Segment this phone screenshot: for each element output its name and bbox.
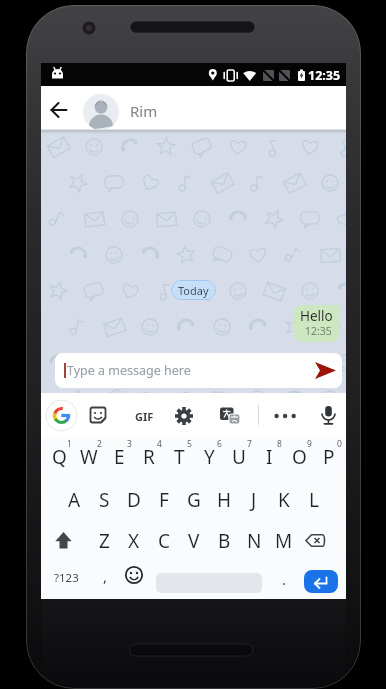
staticText: ?123 — [54, 570, 79, 586]
button[interactable]: H — [209, 485, 239, 515]
button[interactable] — [304, 570, 338, 593]
staticText: , — [103, 566, 108, 586]
button[interactable] — [220, 406, 241, 427]
button[interactable]: X — [119, 526, 149, 556]
staticText: 8 — [277, 438, 282, 450]
button[interactable]: E — [104, 442, 134, 472]
staticText: 7 — [247, 438, 252, 450]
staticText: Hello — [300, 307, 333, 325]
staticText: K — [278, 487, 290, 513]
staticText: Rim — [130, 101, 158, 121]
staticText: Y — [204, 444, 215, 470]
staticText: 6 — [217, 438, 222, 450]
staticText: A — [68, 487, 81, 513]
button[interactable]: Today — [171, 280, 216, 300]
button[interactable]: V — [179, 526, 209, 556]
button[interactable]: N — [239, 526, 269, 556]
button[interactable]: , — [85, 561, 125, 591]
button[interactable] — [46, 400, 77, 431]
staticText: D — [127, 487, 141, 513]
staticText: R — [143, 444, 155, 470]
staticText: 3 — [127, 438, 132, 450]
button[interactable]: Type a message here — [55, 353, 342, 388]
staticText: 12:35 — [308, 67, 341, 84]
staticText: N — [247, 528, 262, 554]
staticText: U — [232, 444, 246, 470]
button[interactable]: C — [149, 526, 179, 556]
button[interactable]: Z — [89, 526, 119, 556]
staticText: 4 — [157, 438, 162, 450]
button[interactable]: R — [134, 442, 164, 472]
staticText: T — [174, 444, 185, 470]
staticText: 5 — [187, 438, 192, 450]
staticText: GIF — [135, 409, 154, 424]
staticText: 0 — [337, 438, 342, 450]
button[interactable]: T — [164, 442, 194, 472]
staticText: 2 — [97, 438, 102, 450]
button[interactable] — [271, 406, 300, 426]
staticText: J — [251, 487, 257, 513]
staticText: 1 — [67, 438, 72, 450]
staticText: B — [218, 528, 231, 554]
button[interactable]: GIF — [124, 401, 164, 431]
staticText: 12:35 — [305, 324, 332, 338]
staticText: 9 — [307, 438, 312, 450]
button[interactable] — [300, 526, 330, 556]
button[interactable]: D — [119, 485, 149, 515]
button[interactable]: U — [224, 442, 254, 472]
button[interactable]: G — [179, 485, 209, 515]
button[interactable]: M — [269, 526, 299, 556]
staticText: W — [80, 444, 98, 470]
staticText: E — [114, 444, 125, 470]
staticText: F — [159, 487, 169, 513]
staticText: I — [266, 444, 273, 470]
button[interactable] — [318, 405, 339, 426]
button[interactable]: S — [89, 485, 119, 515]
staticText: P — [323, 444, 335, 470]
staticText: G — [187, 487, 201, 513]
staticText: S — [99, 487, 110, 513]
button[interactable]: B — [209, 526, 239, 556]
staticText: . — [282, 569, 287, 589]
button[interactable]: O — [284, 442, 314, 472]
button[interactable]: W — [74, 442, 104, 472]
button[interactable]: I — [254, 442, 284, 472]
button[interactable] — [45, 96, 73, 124]
button[interactable] — [174, 406, 194, 426]
staticText: L — [309, 487, 319, 513]
staticText: M — [275, 528, 293, 554]
button[interactable]: A — [59, 485, 89, 515]
staticText: Z — [99, 528, 110, 554]
button[interactable]: Hello — [293, 305, 339, 342]
button[interactable]: . — [264, 564, 304, 594]
staticText: V — [188, 528, 200, 554]
button[interactable] — [49, 526, 79, 556]
button[interactable]: Q — [44, 442, 74, 472]
button[interactable]: Y — [194, 442, 224, 472]
button[interactable]: K — [269, 485, 299, 515]
button[interactable]: J — [239, 485, 269, 515]
button[interactable] — [88, 405, 108, 425]
staticText: O — [292, 444, 307, 470]
staticText: Today — [178, 283, 209, 298]
staticText: Type a message here — [67, 362, 191, 379]
button[interactable]: P — [314, 442, 344, 472]
button[interactable]: F — [149, 485, 179, 515]
button[interactable]: L — [299, 485, 329, 515]
staticText: X — [128, 528, 140, 554]
button[interactable] — [123, 564, 145, 586]
staticText: Q — [52, 444, 67, 470]
button[interactable]: ?123 — [46, 563, 86, 593]
staticText: H — [217, 487, 232, 513]
staticText: C — [158, 528, 171, 554]
